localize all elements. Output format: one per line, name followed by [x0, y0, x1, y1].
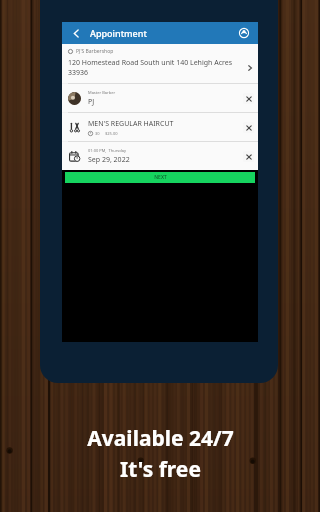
- button[interactable]: Remove: [243, 122, 254, 133]
- staticText: MEN'S REGULAR HAIRCUT: [88, 119, 174, 129]
- staticText: Sep 29, 2022: [88, 155, 130, 165]
- staticText: PJ'S Barbershop: [76, 48, 114, 55]
- staticText: Available 24/7: [87, 424, 234, 453]
- button[interactable]: MEN'S REGULAR HAIRCUT: [62, 113, 258, 141]
- button[interactable]: Remove: [243, 151, 254, 162]
- button[interactable]: Master Barber: [62, 84, 258, 112]
- button[interactable]: Back: [69, 26, 83, 40]
- staticText: Master Barber: [88, 90, 116, 95]
- button[interactable]: Account: [237, 26, 251, 40]
- staticText: $25.00: [105, 131, 118, 136]
- staticText: Appointment: [90, 27, 147, 39]
- staticText: 120 Homestead Road South unit 140 Lehigh…: [68, 58, 233, 78]
- staticText: 30: [95, 131, 100, 136]
- staticText: PJ: [88, 97, 95, 107]
- staticText: NEXT: [154, 174, 167, 181]
- button[interactable]: 01:00 PM, Thursday: [62, 142, 258, 170]
- staticText: It's free: [120, 455, 201, 484]
- button[interactable]: PJ'S Barbershop: [62, 44, 258, 83]
- staticText: 01:00 PM, Thursday: [88, 148, 126, 153]
- button[interactable]: NEXT: [65, 172, 255, 183]
- button[interactable]: Remove: [243, 93, 254, 104]
